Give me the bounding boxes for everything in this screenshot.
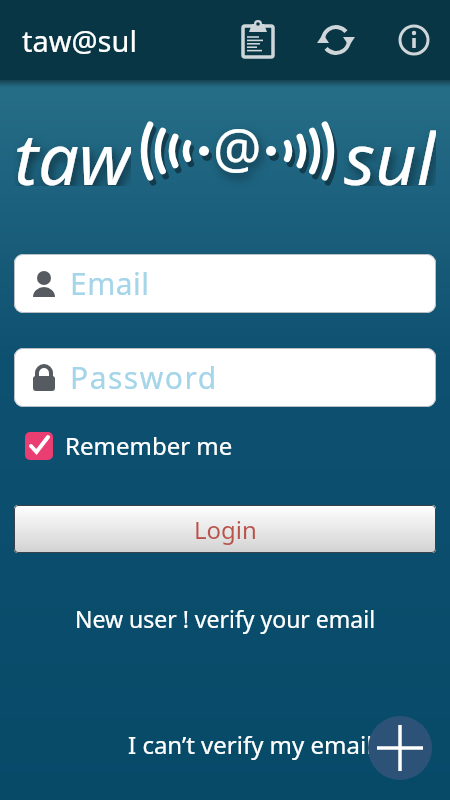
button[interactable] <box>234 0 282 80</box>
staticText: @ <box>213 110 262 184</box>
button[interactable]: Remember me <box>25 429 233 462</box>
button[interactable]: New user ! verify your email <box>0 603 450 634</box>
button[interactable]: Password <box>14 348 436 407</box>
button[interactable] <box>368 716 432 780</box>
staticText: sul <box>344 108 436 186</box>
staticText: taw@sul <box>22 21 137 60</box>
button[interactable]: I can’t verify my email <box>128 728 373 761</box>
staticText: Login <box>194 513 257 546</box>
staticText: taw <box>14 108 131 186</box>
staticText: Password <box>70 357 218 398</box>
button[interactable]: Email <box>14 254 436 313</box>
button[interactable]: Login <box>14 505 436 553</box>
staticText: Remember me <box>65 429 233 462</box>
button[interactable] <box>390 0 438 80</box>
staticText: Email <box>70 263 150 304</box>
button[interactable] <box>312 0 360 80</box>
